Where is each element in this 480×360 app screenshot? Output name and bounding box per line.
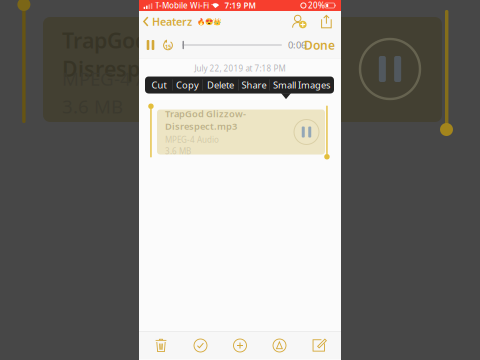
button[interactable]: Done (304, 35, 335, 55)
staticText: 20% (306, 0, 325, 11)
staticText: Share (241, 79, 266, 91)
staticText: Copy (176, 79, 199, 91)
button[interactable]: Checklist (185, 332, 215, 359)
staticText: Cut (151, 79, 166, 91)
button[interactable]: Skip back fifteen seconds (159, 35, 177, 55)
staticText: TrapGod Glizzow- (62, 26, 239, 54)
button[interactable]: Cut (146, 76, 172, 93)
button[interactable]: Copy (172, 76, 202, 93)
button[interactable]: Small Images (270, 76, 333, 93)
staticText: 0:06 (288, 39, 306, 51)
staticText: TrapGod Glizzow- (165, 107, 246, 120)
button[interactable]: Delete (203, 76, 238, 93)
staticText: MPEG-4 Audio (165, 134, 219, 145)
button[interactable]: Share (311, 14, 335, 28)
staticText: Heaterz (152, 14, 192, 29)
button[interactable]: Add people (287, 14, 311, 29)
button[interactable]: New note (304, 332, 334, 359)
staticText: 3.6 MB (165, 146, 191, 156)
staticText: MPEG-4 Audio (62, 66, 187, 91)
staticText: 15 (165, 43, 171, 50)
button[interactable]: Delete note (146, 332, 176, 359)
staticText: Done (304, 37, 335, 53)
staticText: 7:19 PM (224, 0, 255, 11)
staticText: 🔥😍👑 (196, 18, 220, 25)
staticText: July 22, 2019 at 7:18 PM (194, 63, 285, 74)
button[interactable]: Share (238, 76, 269, 93)
staticText: Small Images (273, 79, 330, 91)
staticText: Delete (207, 79, 234, 91)
button[interactable]: Markup (264, 332, 294, 359)
staticText: Disrespect.mp3 (165, 120, 237, 132)
staticText: Disrespect.mp3 (62, 54, 223, 83)
button[interactable]: Heaterz (139, 11, 220, 32)
button[interactable]: Pause (142, 35, 159, 55)
button[interactable]: Add attachment (225, 332, 255, 359)
button[interactable]: TrapGod Glizzow- (157, 109, 325, 154)
staticText: T-Mobile Wi-Fi (153, 0, 211, 11)
